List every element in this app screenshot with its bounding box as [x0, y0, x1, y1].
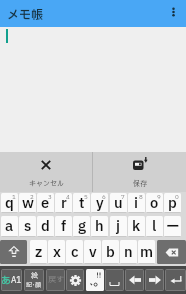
staticText: 2: [30, 193, 34, 202]
button[interactable]: e: [37, 193, 54, 213]
staticText: 9: [157, 193, 161, 202]
staticText: メモ帳: [7, 6, 44, 24]
button[interactable]: v: [84, 240, 101, 264]
staticText: A1: [11, 275, 22, 287]
staticText: 7: [121, 193, 125, 202]
button[interactable]: a: [1, 216, 18, 237]
staticText: z: [35, 242, 43, 263]
button[interactable]: z: [30, 240, 47, 264]
staticText: 保存: [133, 179, 147, 189]
button[interactable]: w: [19, 193, 36, 213]
button[interactable]: t: [73, 193, 90, 213]
staticText: 6: [102, 193, 106, 202]
staticText: y: [96, 193, 104, 213]
button[interactable]: ー: [164, 216, 181, 237]
staticText: e: [41, 193, 50, 213]
button[interactable]: [165, 269, 186, 291]
button[interactable]: h: [91, 216, 108, 237]
staticText: s: [24, 216, 32, 237]
staticText: o: [150, 193, 159, 213]
button[interactable]: j: [110, 216, 127, 237]
staticText: 3: [48, 193, 52, 202]
staticText: l: [152, 216, 157, 237]
staticText: j: [116, 216, 121, 237]
staticText: x: [53, 242, 61, 263]
staticText: あ: [1, 273, 11, 288]
button[interactable]: y: [91, 193, 108, 213]
button[interactable]: [66, 269, 84, 291]
staticText: f: [61, 216, 67, 237]
button[interactable]: 保存: [93, 152, 186, 192]
staticText: w: [22, 193, 34, 213]
button[interactable]: あ: [1, 269, 22, 291]
button[interactable]: k: [128, 216, 145, 237]
button[interactable]: c: [66, 240, 83, 264]
staticText: g: [78, 216, 86, 237]
staticText: v: [89, 242, 97, 263]
button[interactable]: f: [55, 216, 72, 237]
staticText: r: [61, 193, 67, 213]
staticText: d: [41, 216, 50, 237]
staticText: 絵: [31, 271, 38, 281]
staticText: 記･顔: [26, 281, 42, 290]
button[interactable]: g: [73, 216, 90, 237]
button[interactable]: m: [138, 240, 155, 264]
staticText: u: [114, 193, 123, 213]
staticText: k: [132, 216, 141, 237]
staticText: p: [168, 193, 177, 213]
button[interactable]: [0, 240, 27, 264]
button[interactable]: d: [37, 216, 54, 237]
staticText: 戻す: [48, 274, 64, 286]
staticText: c: [71, 242, 79, 263]
button[interactable]: [105, 269, 124, 291]
staticText: h: [95, 216, 104, 237]
button[interactable]: 戻す: [46, 269, 65, 291]
button[interactable]: s: [19, 216, 36, 237]
button[interactable]: [162, 0, 186, 27]
staticText: 8: [139, 193, 143, 202]
staticText: q: [5, 193, 14, 213]
staticText: m: [140, 242, 154, 263]
button[interactable]: 絵: [24, 269, 44, 291]
button[interactable]: p: [164, 193, 181, 213]
button[interactable]: l: [146, 216, 163, 237]
button[interactable]: q: [1, 193, 18, 213]
staticText: 4: [66, 193, 70, 202]
button[interactable]: b: [102, 240, 119, 264]
staticText: i: [134, 193, 139, 213]
button[interactable]: u: [110, 193, 127, 213]
button[interactable]: n: [120, 240, 137, 264]
button[interactable]: i: [128, 193, 145, 213]
staticText: 0: [175, 193, 179, 202]
button[interactable]: [157, 240, 186, 264]
staticText: 5: [84, 193, 88, 202]
staticText: ー: [166, 216, 180, 237]
staticText: n: [124, 242, 133, 263]
button[interactable]: x: [48, 240, 65, 264]
button[interactable]: o: [146, 193, 163, 213]
staticText: b: [106, 242, 115, 263]
staticText: t: [79, 193, 85, 213]
staticText: キャンセル: [29, 179, 64, 189]
button[interactable]: キャンセル: [0, 152, 92, 192]
button[interactable]: r: [55, 193, 72, 213]
button[interactable]: [145, 269, 164, 291]
staticText: a: [5, 216, 14, 237]
staticText: 1: [12, 193, 16, 202]
button[interactable]: [86, 269, 104, 291]
button[interactable]: [125, 269, 144, 291]
